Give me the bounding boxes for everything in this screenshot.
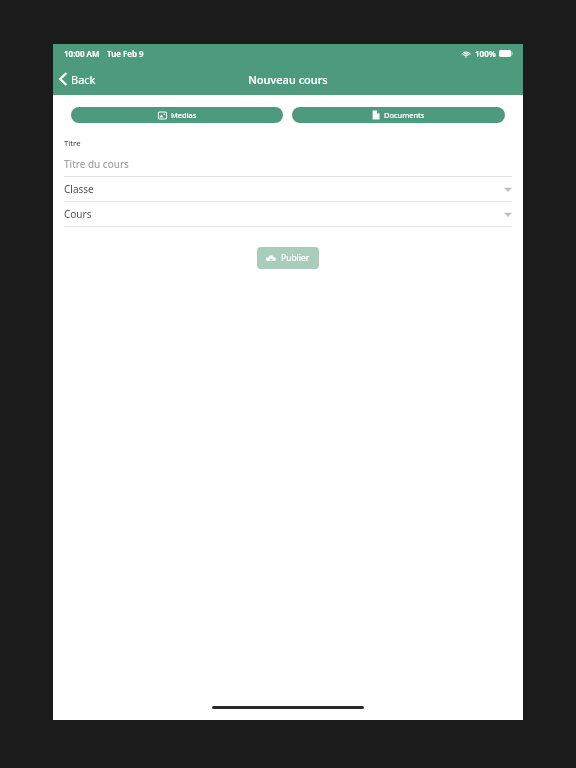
button[interactable]: Publier xyxy=(257,247,319,269)
staticText: Nouveau cours xyxy=(248,72,328,87)
staticText: Titre xyxy=(64,138,81,148)
button[interactable]: Cours xyxy=(53,202,523,226)
button[interactable]: Classe xyxy=(53,177,523,201)
staticText: Medias xyxy=(171,110,197,120)
button[interactable]: Medias xyxy=(71,107,283,123)
staticText: Documents xyxy=(384,110,425,120)
staticText: 100% xyxy=(475,48,496,59)
staticText: Cours xyxy=(64,207,92,221)
staticText: Classe xyxy=(64,182,94,196)
staticText: Publier xyxy=(281,252,310,264)
staticText: Back xyxy=(71,72,96,87)
button[interactable]: Documents xyxy=(292,107,505,123)
staticText: 10:00 AM xyxy=(64,48,100,59)
staticText: Tue Feb 9 xyxy=(107,48,144,59)
button[interactable]: Back xyxy=(53,63,106,95)
button[interactable]: Titre du cours xyxy=(64,155,512,172)
staticText: Titre du cours xyxy=(64,157,129,171)
